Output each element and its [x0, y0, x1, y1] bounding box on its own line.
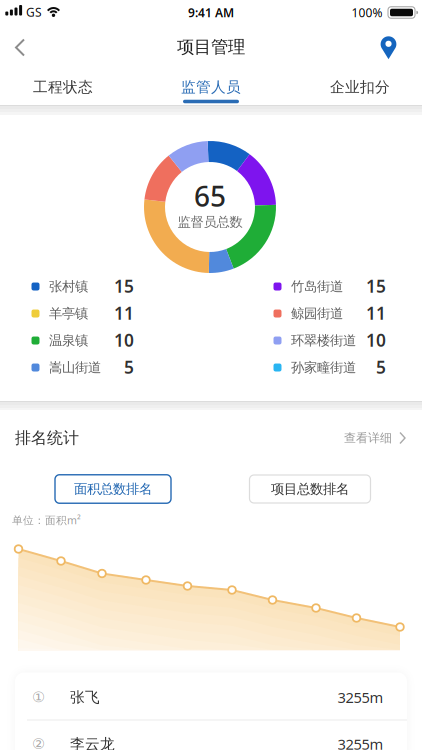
staticText: 5 — [376, 355, 386, 378]
staticText: 10 — [114, 328, 134, 351]
staticText: 项目管理 — [177, 36, 245, 58]
staticText: 企业扣分 — [330, 78, 390, 96]
staticText: 环翠楼街道 — [291, 332, 356, 349]
button[interactable] — [0, 0, 40, 38]
staticText: 监管人员 — [181, 78, 241, 96]
staticText: 鲸园街道 — [291, 305, 343, 322]
staticText: 竹岛街道 — [291, 278, 343, 295]
staticText: 嵩山街道 — [49, 359, 101, 376]
staticText: ① — [32, 689, 45, 705]
staticText: 单位：面积m² — [12, 513, 81, 527]
staticText: 100% — [351, 4, 382, 20]
staticText: 3255m — [337, 687, 383, 707]
staticText: 15 — [114, 274, 134, 297]
button[interactable]: 监管人员 — [156, 70, 266, 104]
staticText: 孙家疃街道 — [291, 359, 356, 376]
staticText: 张村镇 — [49, 278, 88, 295]
staticText: 项目总数排名 — [271, 481, 349, 497]
staticText: 温泉镇 — [49, 332, 88, 349]
staticText: 面积总数排名 — [74, 481, 152, 497]
staticText: 11 — [114, 301, 134, 324]
staticText: 查看详细 — [344, 431, 392, 445]
staticText: 排名统计 — [15, 428, 79, 448]
staticText: 监督员总数 — [177, 214, 242, 230]
staticText: 9:41 AM — [188, 4, 234, 20]
button[interactable] — [373, 32, 403, 62]
staticText: 11 — [366, 301, 386, 324]
staticText: 15 — [366, 274, 386, 297]
button[interactable]: 工程状态 — [8, 70, 118, 104]
staticText: 羊亭镇 — [49, 305, 88, 322]
button[interactable]: 项目总数排名 — [249, 475, 370, 503]
button[interactable]: ① — [0, 673, 422, 721]
button[interactable]: 面积总数排名 — [55, 475, 171, 503]
staticText: 李云龙 — [70, 735, 115, 750]
button[interactable]: 企业扣分 — [305, 70, 415, 104]
staticText: 张飞 — [70, 688, 100, 706]
staticText: 10 — [366, 328, 386, 351]
staticText: 3255m — [337, 734, 383, 750]
staticText: 65 — [194, 177, 226, 215]
button[interactable]: ② — [0, 722, 422, 750]
staticText: 工程状态 — [33, 78, 93, 96]
staticText: GS — [26, 4, 42, 20]
staticText: ② — [32, 736, 45, 750]
button[interactable]: 查看详细 — [338, 428, 408, 448]
staticText: 5 — [124, 355, 134, 378]
